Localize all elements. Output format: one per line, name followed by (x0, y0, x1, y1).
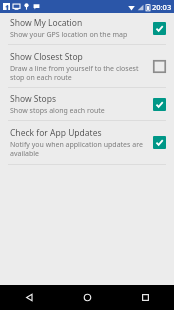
button[interactable]: Home (58, 285, 116, 310)
staticText: Show your GPS location on the map (10, 30, 128, 40)
button[interactable]: Checked (153, 136, 166, 149)
staticText: Notify you when application updates are … (10, 140, 147, 158)
button[interactable]: Check for App Updates (0, 121, 174, 164)
button[interactable]: Show Closest Stop (0, 45, 174, 87)
staticText: Draw a line from yourself to the closest… (10, 64, 147, 82)
staticText: Show Closest Stop (10, 51, 83, 63)
staticText: Show Stops (10, 93, 56, 105)
button[interactable]: Show Stops (0, 88, 174, 120)
button[interactable]: Unchecked (153, 60, 166, 73)
button[interactable]: Recent apps (116, 285, 174, 310)
button[interactable]: Checked (153, 22, 166, 35)
staticText: 20:03 (152, 2, 172, 12)
staticText: Show My Location (10, 17, 83, 29)
button[interactable]: Show My Location (0, 13, 174, 44)
staticText: Check for App Updates (10, 127, 102, 139)
button[interactable]: Checked (153, 98, 166, 111)
staticText: Show stops along each route (10, 106, 105, 116)
button[interactable]: Back (0, 285, 58, 310)
